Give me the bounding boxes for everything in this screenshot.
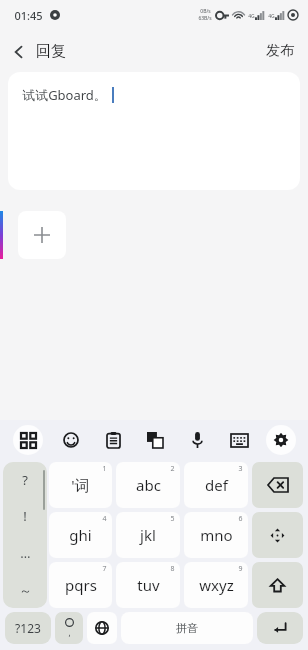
button[interactable]: '词	[49, 462, 112, 508]
button[interactable]: ?	[3, 462, 47, 498]
staticText: ～	[19, 582, 32, 598]
button[interactable]: …	[3, 534, 47, 571]
staticText: 1	[102, 464, 107, 474]
staticText: 试试Gboard。	[22, 86, 107, 104]
button[interactable]: abc	[116, 462, 180, 508]
staticText: 4G	[268, 13, 275, 20]
button[interactable]: Shift	[252, 562, 303, 608]
button[interactable]: tuv	[116, 562, 180, 608]
staticText: 4G	[248, 13, 255, 20]
staticText: 2	[170, 464, 175, 474]
staticText: 回复	[36, 42, 66, 61]
other: Back	[12, 45, 26, 59]
button[interactable]: pqrs	[49, 562, 112, 608]
button[interactable]: Enter	[257, 612, 303, 644]
button[interactable]: 试试Gboard。	[8, 72, 300, 190]
staticText: abc	[136, 475, 161, 495]
staticText: ?123	[15, 620, 41, 636]
button[interactable]: def	[184, 462, 248, 508]
staticText: 01:45	[14, 8, 43, 23]
staticText: pqrs	[65, 575, 97, 595]
button[interactable]: Emoji	[49, 420, 92, 460]
button[interactable]: Settings	[260, 420, 302, 460]
button[interactable]: Emoji and comma	[55, 612, 83, 644]
staticText: '词	[71, 475, 90, 495]
staticText: jkl	[140, 525, 156, 545]
button[interactable]: Keyboard layout	[218, 420, 260, 460]
button[interactable]: Move cursor	[252, 512, 303, 558]
button[interactable]: ghi	[49, 512, 112, 558]
staticText: ,	[68, 627, 71, 638]
button[interactable]: wxyz	[184, 562, 248, 608]
staticText: 发布	[266, 42, 294, 60]
button[interactable]: 发布	[252, 34, 308, 68]
staticText: 5	[170, 514, 175, 524]
staticText: mno	[200, 525, 233, 545]
button[interactable]: 拼音	[121, 612, 253, 644]
staticText: tuv	[137, 575, 160, 595]
button[interactable]: mno	[184, 512, 248, 558]
button[interactable]: Voice input	[176, 420, 218, 460]
button[interactable]: Translate	[134, 420, 176, 460]
button[interactable]: Back	[0, 36, 78, 67]
button[interactable]: Backspace	[252, 462, 303, 508]
button[interactable]: Add image	[18, 211, 66, 259]
button[interactable]: !	[3, 498, 47, 534]
staticText: 9	[238, 564, 243, 574]
staticText: ?	[22, 471, 28, 489]
staticText: 7	[102, 564, 107, 574]
staticText: 6	[238, 514, 243, 524]
staticText: ghi	[69, 525, 92, 545]
staticText: wxyz	[199, 575, 234, 595]
button[interactable]: Apps	[6, 420, 49, 460]
button[interactable]: Switch language	[87, 612, 117, 644]
staticText: 3	[238, 464, 243, 474]
staticText: 63B/s	[198, 15, 212, 22]
staticText: 拼音	[176, 621, 198, 635]
staticText: …	[20, 544, 31, 562]
button[interactable]: ?123	[5, 612, 51, 644]
staticText: 0B/s	[200, 8, 211, 15]
staticText: !	[23, 507, 27, 525]
staticText: def	[205, 475, 228, 495]
staticText: 4	[102, 514, 107, 524]
button[interactable]: jkl	[116, 512, 180, 558]
button[interactable]: Clipboard	[92, 420, 134, 460]
staticText: 8	[170, 564, 175, 574]
button[interactable]: ～	[3, 571, 47, 608]
